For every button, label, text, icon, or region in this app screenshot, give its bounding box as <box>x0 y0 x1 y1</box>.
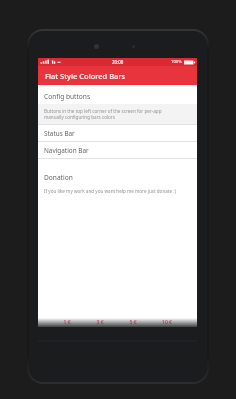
staticText: 100% <box>171 59 182 65</box>
staticText: Buttons in the top left corner of the sc… <box>44 108 162 120</box>
staticText: 1 € <box>63 319 71 326</box>
button[interactable]: Status Bar <box>38 125 197 141</box>
button[interactable]: 10 € <box>162 317 172 327</box>
staticText: Donation <box>44 173 73 182</box>
staticText: Flat Style Colored Bars <box>45 71 126 81</box>
staticText: Config buttons <box>44 92 91 101</box>
button[interactable]: 1 € <box>63 317 71 327</box>
button[interactable]: Flat Style Colored Bars <box>38 66 197 85</box>
staticText: Navigation Bar <box>44 146 89 155</box>
button[interactable]: 5 € <box>129 317 137 327</box>
staticText: 10 € <box>162 319 172 326</box>
staticText: 20:00 <box>112 59 124 65</box>
staticText: If you like my work and you want help me… <box>44 188 176 194</box>
staticText: 5 € <box>129 319 137 326</box>
button[interactable]: Navigation Bar <box>38 142 197 158</box>
staticText: Status Bar <box>44 129 75 138</box>
button[interactable]: 3 € <box>96 317 104 327</box>
staticText: 3 € <box>96 319 104 326</box>
